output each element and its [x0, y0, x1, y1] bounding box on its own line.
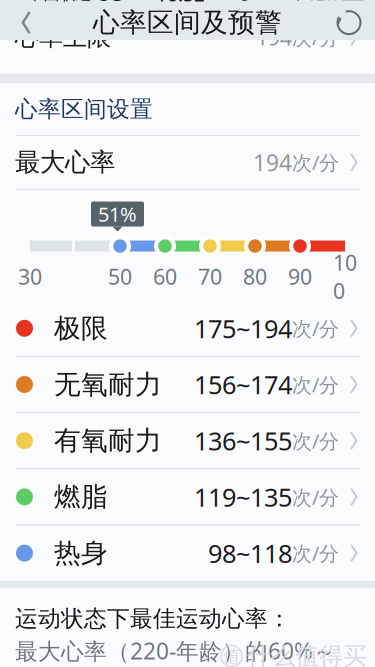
button[interactable]: 心率上限 — [0, 40, 375, 74]
staticText: 值 — [223, 645, 240, 667]
staticText: 最大心率（220-年龄）的60%～80% — [15, 636, 336, 667]
staticText: 次/分 — [292, 315, 339, 342]
staticText: 有氧耐力 — [54, 424, 162, 457]
button[interactable]: 返回 — [3, 5, 49, 40]
staticText: 次/分 — [292, 427, 339, 454]
staticText: 燃脂 — [54, 480, 108, 513]
staticText: 98~118 — [208, 536, 292, 570]
staticText: 60 — [153, 262, 177, 291]
staticText: 51% — [98, 201, 137, 227]
staticText: 心率上限 — [15, 22, 111, 52]
staticText: 次/分 — [292, 149, 339, 176]
button[interactable]: 最大心率 — [0, 136, 375, 189]
staticText: 16:52 — [156, 0, 205, 7]
staticText: 运动状态下最佳运动心率： — [15, 605, 291, 633]
staticText: 无氧耐力 — [54, 368, 162, 401]
staticText: 62% — [307, 0, 338, 5]
staticText: 极限 — [54, 312, 108, 345]
staticText: 心率区间及预警 — [93, 6, 282, 39]
staticText: 热身 — [54, 537, 108, 569]
button[interactable]: 无氧耐力 — [0, 357, 375, 412]
staticText: 心率区间设置 — [15, 95, 153, 123]
staticText: 次/分 — [292, 540, 339, 566]
staticText: 156~174 — [194, 368, 292, 401]
staticText: 最大心率 — [15, 147, 115, 178]
button[interactable]: 极限 — [0, 301, 375, 356]
staticText: 194 — [253, 147, 292, 177]
staticText: 次/分 — [292, 484, 339, 510]
staticText: 什么值得买 — [247, 641, 367, 667]
staticText: 50 — [108, 262, 132, 291]
staticText: 次/分 — [292, 371, 339, 398]
staticText: 3G — [99, 0, 122, 6]
button[interactable]: 燃脂 — [0, 469, 375, 525]
staticText: 30 — [18, 262, 42, 291]
staticText: 100 — [333, 248, 357, 305]
staticText: 194 — [256, 23, 292, 51]
button[interactable]: 有氧耐力 — [0, 413, 375, 468]
staticText: 次/分 — [292, 24, 339, 50]
staticText: 175~194 — [194, 311, 292, 345]
staticText: 中国联通 — [27, 0, 91, 4]
button[interactable]: 重置 — [326, 5, 372, 40]
staticText: 80 — [243, 262, 267, 291]
staticText: 136~155 — [194, 424, 292, 457]
staticText: 90 — [288, 262, 312, 291]
button[interactable]: 热身 — [0, 525, 375, 581]
staticText: 119~135 — [194, 480, 292, 514]
staticText: 70 — [198, 262, 222, 291]
